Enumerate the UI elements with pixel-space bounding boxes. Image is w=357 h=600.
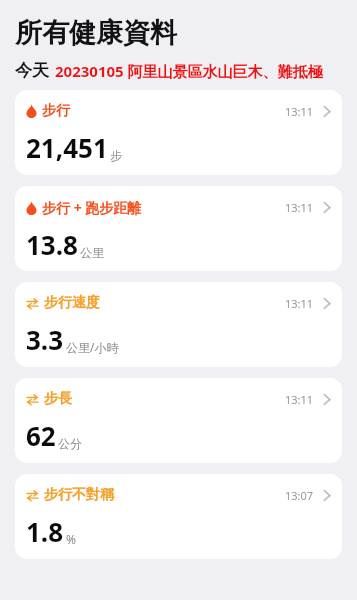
staticText: 3.3 bbox=[26, 322, 64, 357]
staticText: % bbox=[66, 531, 76, 547]
staticText: 13:11 bbox=[285, 104, 314, 119]
staticText: 步行不對稱 bbox=[44, 486, 114, 504]
staticText: 步行速度 bbox=[44, 294, 100, 312]
staticText: 62 bbox=[26, 418, 56, 453]
button[interactable]: 步行不對稱 bbox=[15, 474, 342, 559]
staticText: 21,451 bbox=[26, 130, 108, 165]
staticText: 今天 bbox=[15, 60, 49, 81]
staticText: 13:07 bbox=[285, 488, 314, 503]
staticText: 公分 bbox=[58, 436, 82, 451]
staticText: 公里 bbox=[80, 245, 104, 260]
staticText: 所有健康資料 bbox=[15, 16, 177, 50]
button[interactable]: 步長 bbox=[15, 378, 342, 463]
staticText: 步長 bbox=[44, 390, 72, 408]
staticText: 步行 bbox=[42, 102, 70, 120]
staticText: 13:11 bbox=[285, 200, 314, 215]
other: Show details bbox=[323, 297, 331, 310]
button[interactable]: 步行 bbox=[15, 90, 342, 175]
other: Show details bbox=[323, 489, 331, 502]
staticText: 13:11 bbox=[285, 296, 314, 311]
staticText: 13:11 bbox=[285, 392, 314, 407]
staticText: 步 bbox=[110, 148, 122, 163]
other: Show details bbox=[323, 393, 331, 406]
other: Show details bbox=[323, 201, 331, 214]
staticText: 步行 + 跑步距離 bbox=[42, 198, 142, 217]
button[interactable]: 步行 + 跑步距離 bbox=[15, 186, 342, 271]
staticText: 13.8 bbox=[26, 227, 78, 262]
staticText: 1.8 bbox=[26, 514, 64, 549]
button[interactable]: 步行速度 bbox=[15, 282, 342, 367]
staticText: 公里/小時 bbox=[66, 339, 119, 355]
staticText: 20230105 阿里山景區水山巨木、難抵極 bbox=[55, 61, 323, 81]
other: Show details bbox=[323, 105, 331, 118]
